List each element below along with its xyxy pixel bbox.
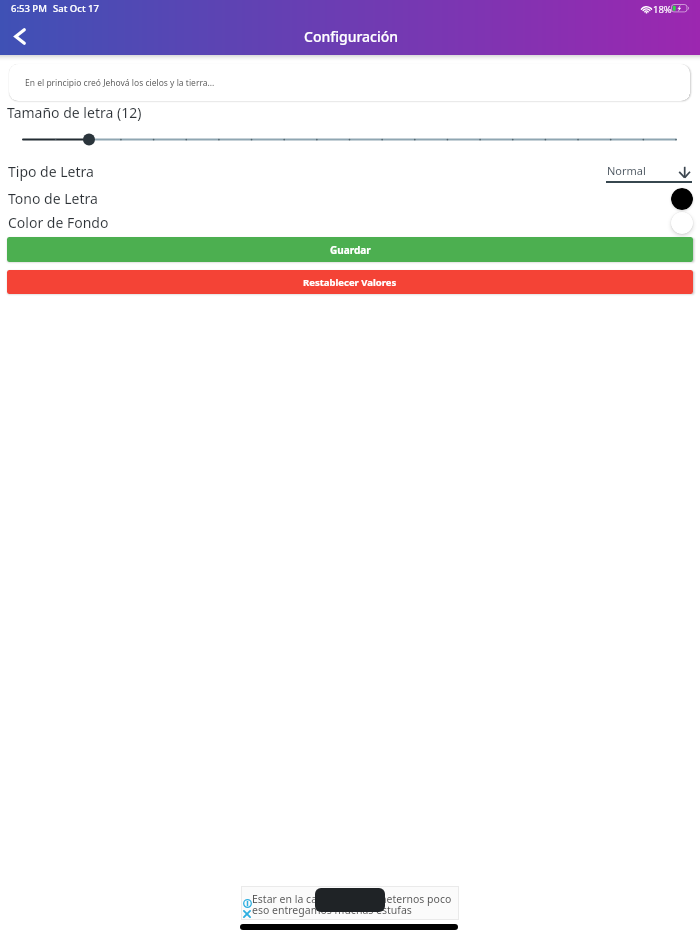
staticText: Color de Fondo (8, 213, 109, 232)
staticText: Tono de Letra (8, 189, 98, 208)
button[interactable]: Normal (606, 163, 692, 183)
staticText: Sat Oct 17 (53, 2, 99, 15)
staticText: 6:53 PM (11, 2, 47, 15)
staticText: Normal (607, 163, 646, 178)
button[interactable]: Font colour (671, 188, 693, 210)
staticText: Restablecer Valores (303, 276, 397, 289)
staticText: Tipo de Letra (8, 162, 94, 181)
other: Close ad (243, 910, 251, 918)
button[interactable]: Guardar (7, 237, 693, 262)
button[interactable]: Background colour (671, 212, 693, 234)
button[interactable]: Restablecer Valores (7, 270, 693, 294)
button[interactable]: En el principio creó Jehová los cielos y… (9, 64, 690, 101)
button[interactable]: Back (3, 19, 37, 53)
staticText: Estar en la calle y nos prometernos poco (252, 892, 452, 906)
staticText: Tamaño de letra (12) (7, 103, 142, 122)
staticText: eso entregamos muchas estufas (252, 903, 412, 917)
button[interactable]: Font size slider (0, 128, 700, 152)
button[interactable]: Ad information (241, 886, 459, 920)
other: Ad information (243, 899, 252, 908)
staticText: 18% (653, 3, 672, 16)
staticText: Guardar (330, 243, 371, 257)
staticText: En el principio creó Jehová los cielos y… (25, 77, 215, 89)
staticText: Configuración (304, 27, 399, 46)
